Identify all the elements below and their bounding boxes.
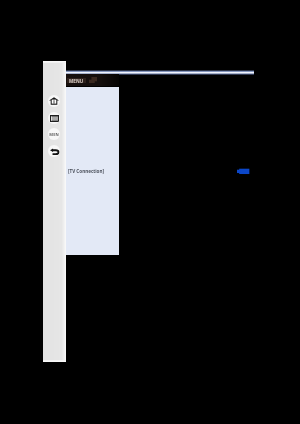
staticText: MENU	[48, 132, 60, 137]
button[interactable]: [TV Connection]	[68, 168, 105, 174]
button[interactable]: Back	[48, 145, 60, 157]
staticText: MENU	[69, 78, 84, 83]
button[interactable]: Menu	[48, 128, 60, 140]
button[interactable]: MENU	[66, 74, 119, 86]
button[interactable]: Display	[48, 112, 60, 124]
button[interactable]: Video	[237, 168, 250, 175]
button[interactable]: Home	[48, 95, 60, 107]
